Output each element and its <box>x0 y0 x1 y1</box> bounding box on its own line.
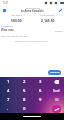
button[interactable]: 5 <box>16 86 32 95</box>
staticText: 6 <box>39 88 42 94</box>
button[interactable]: Backspace <box>52 77 61 86</box>
staticText: 00 <box>55 98 59 102</box>
staticText: Fee included in the rate <box>1 34 28 37</box>
button[interactable]: Close <box>1 7 7 13</box>
staticText: 3 <box>39 79 42 85</box>
staticText: Send money <box>26 6 40 9</box>
staticText: 9 <box>39 97 42 103</box>
button[interactable]: Send money <box>52 105 61 113</box>
button[interactable]: 6 <box>32 86 48 95</box>
button[interactable]: 4 <box>0 86 16 95</box>
button[interactable]: . <box>0 104 16 113</box>
staticText: . <box>7 106 9 112</box>
button[interactable]: 00 <box>51 96 62 103</box>
staticText: Rates update every 30 seconds <box>15 40 49 43</box>
staticText: They receive <box>40 13 55 16</box>
button[interactable]: 8 <box>16 95 32 104</box>
staticText: Wise rate <box>1 28 14 32</box>
button[interactable]: Send <box>51 87 62 94</box>
button[interactable]: 3 <box>32 77 48 86</box>
staticText: 5 <box>23 88 26 94</box>
staticText: 2,145.50 <box>41 18 55 23</box>
button[interactable] <box>32 104 48 113</box>
button[interactable]: 0 <box>16 104 32 113</box>
staticText: Send <box>53 89 60 93</box>
staticText: 0 <box>23 106 26 112</box>
button[interactable]: Edit <box>57 7 63 13</box>
staticText: You send <box>11 13 22 16</box>
button[interactable]: 1 <box>0 77 16 86</box>
staticText: 4.2910 <box>55 29 63 32</box>
button[interactable]: 7 <box>0 95 16 104</box>
staticText: 500.00 <box>11 18 22 23</box>
staticText: Continue <box>50 71 60 74</box>
staticText: 8 <box>23 97 26 103</box>
staticText: 7 <box>7 97 10 103</box>
staticText: 9:41 <box>3 1 9 5</box>
staticText: 1 <box>7 79 10 85</box>
button[interactable]: 9 <box>32 95 48 104</box>
staticText: 2 <box>23 79 26 85</box>
staticText: 4 <box>7 88 10 94</box>
staticText: to Anna Kowalski <box>21 9 44 13</box>
button[interactable]: Continue <box>48 70 61 75</box>
button[interactable]: 2 <box>16 77 32 86</box>
